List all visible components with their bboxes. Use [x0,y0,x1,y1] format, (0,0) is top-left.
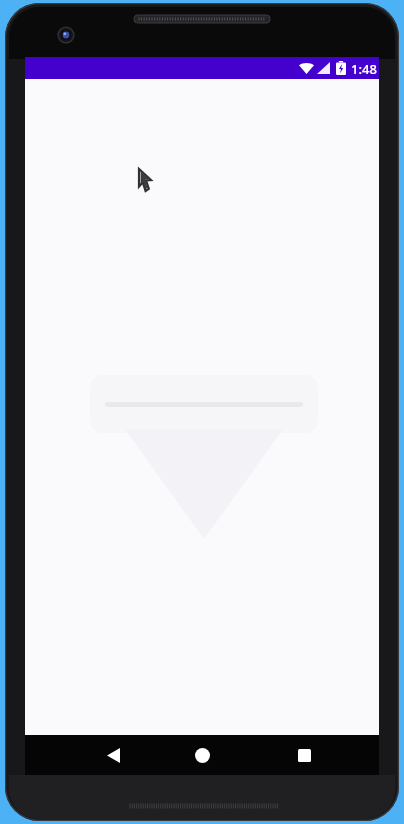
staticText: 1:48 [351,60,377,78]
button[interactable]: Recent apps [275,735,333,775]
other: Wi-Fi [299,62,314,74]
button[interactable] [90,375,318,433]
other: Mobile signal [317,62,330,74]
button[interactable]: Home [173,735,231,775]
button[interactable]: Back [84,735,142,775]
other: Battery charging [336,61,346,75]
